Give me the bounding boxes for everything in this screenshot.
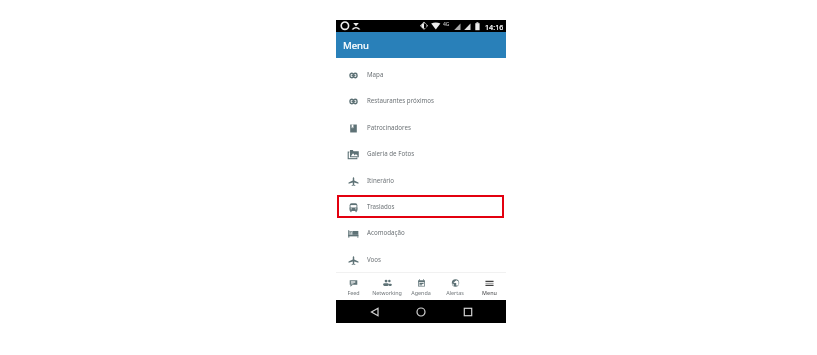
button[interactable]: Feed	[336, 270, 370, 300]
staticText: Voos	[367, 255, 382, 263]
button[interactable]: Agenda	[404, 270, 438, 300]
button[interactable]: Traslados	[336, 193, 506, 219]
button[interactable]: Patrocinadores	[336, 114, 506, 140]
staticText: Agenda	[411, 289, 431, 296]
staticText: Itinerário	[367, 176, 395, 184]
staticText: Feed	[347, 289, 360, 296]
staticText: Galeria de Fotos	[367, 149, 415, 157]
staticText: Patrocinadores	[367, 123, 411, 131]
button[interactable]: Recent apps	[460, 304, 476, 320]
button[interactable]: Acomodação	[336, 219, 506, 245]
button[interactable]: Alertas	[438, 270, 472, 300]
button[interactable]: Galeria de Fotos	[336, 140, 506, 166]
staticText: Acomodação	[367, 228, 405, 236]
button[interactable]: Restaurantes próximos	[336, 87, 506, 113]
staticText: Menu	[343, 39, 369, 52]
button[interactable]: Mapa	[336, 61, 506, 87]
staticText: Alertas	[446, 289, 464, 296]
staticText: 4G	[443, 21, 450, 28]
button[interactable]: Home	[413, 304, 429, 320]
button[interactable]: Voos	[336, 246, 506, 272]
button[interactable]: Networking	[370, 270, 404, 300]
staticText: Traslados	[367, 202, 395, 210]
button[interactable]: Back	[367, 304, 383, 320]
button[interactable]: Itinerário	[336, 167, 506, 193]
staticText: Networking	[372, 289, 402, 296]
button[interactable]: Menu	[472, 270, 506, 300]
staticText: Restaurantes próximos	[367, 96, 435, 104]
staticText: Mapa	[367, 70, 384, 78]
staticText: Menu	[482, 289, 497, 296]
staticText: 14:16	[485, 22, 504, 32]
